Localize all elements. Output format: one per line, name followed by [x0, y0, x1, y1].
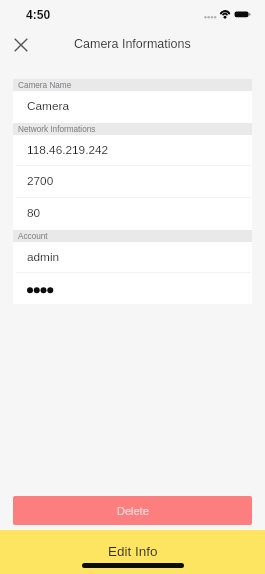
staticText: Camera Name — [18, 81, 72, 90]
button[interactable] — [13, 273, 252, 304]
staticText: Edit Info — [108, 544, 158, 559]
staticText: 80 — [27, 206, 41, 219]
button[interactable]: Delete — [13, 496, 252, 525]
staticText: Account — [18, 232, 48, 241]
staticText: 2700 — [27, 174, 54, 187]
staticText: 118.46.219.242 — [27, 143, 109, 156]
button[interactable]: 80 — [13, 198, 252, 230]
staticText: 4:50 — [26, 8, 51, 22]
button[interactable]: Edit Info — [0, 530, 265, 574]
button[interactable]: Close — [8, 32, 34, 58]
button[interactable]: 2700 — [13, 166, 252, 198]
staticText: Delete — [117, 505, 149, 517]
button[interactable]: 118.46.219.242 — [13, 135, 252, 166]
staticText: admin — [27, 250, 60, 263]
staticText: Camera — [27, 99, 69, 112]
staticText: Camera Informations — [74, 37, 191, 51]
button[interactable]: admin — [13, 242, 252, 273]
button[interactable]: Camera — [13, 91, 252, 123]
staticText: Network Informations — [18, 125, 96, 134]
